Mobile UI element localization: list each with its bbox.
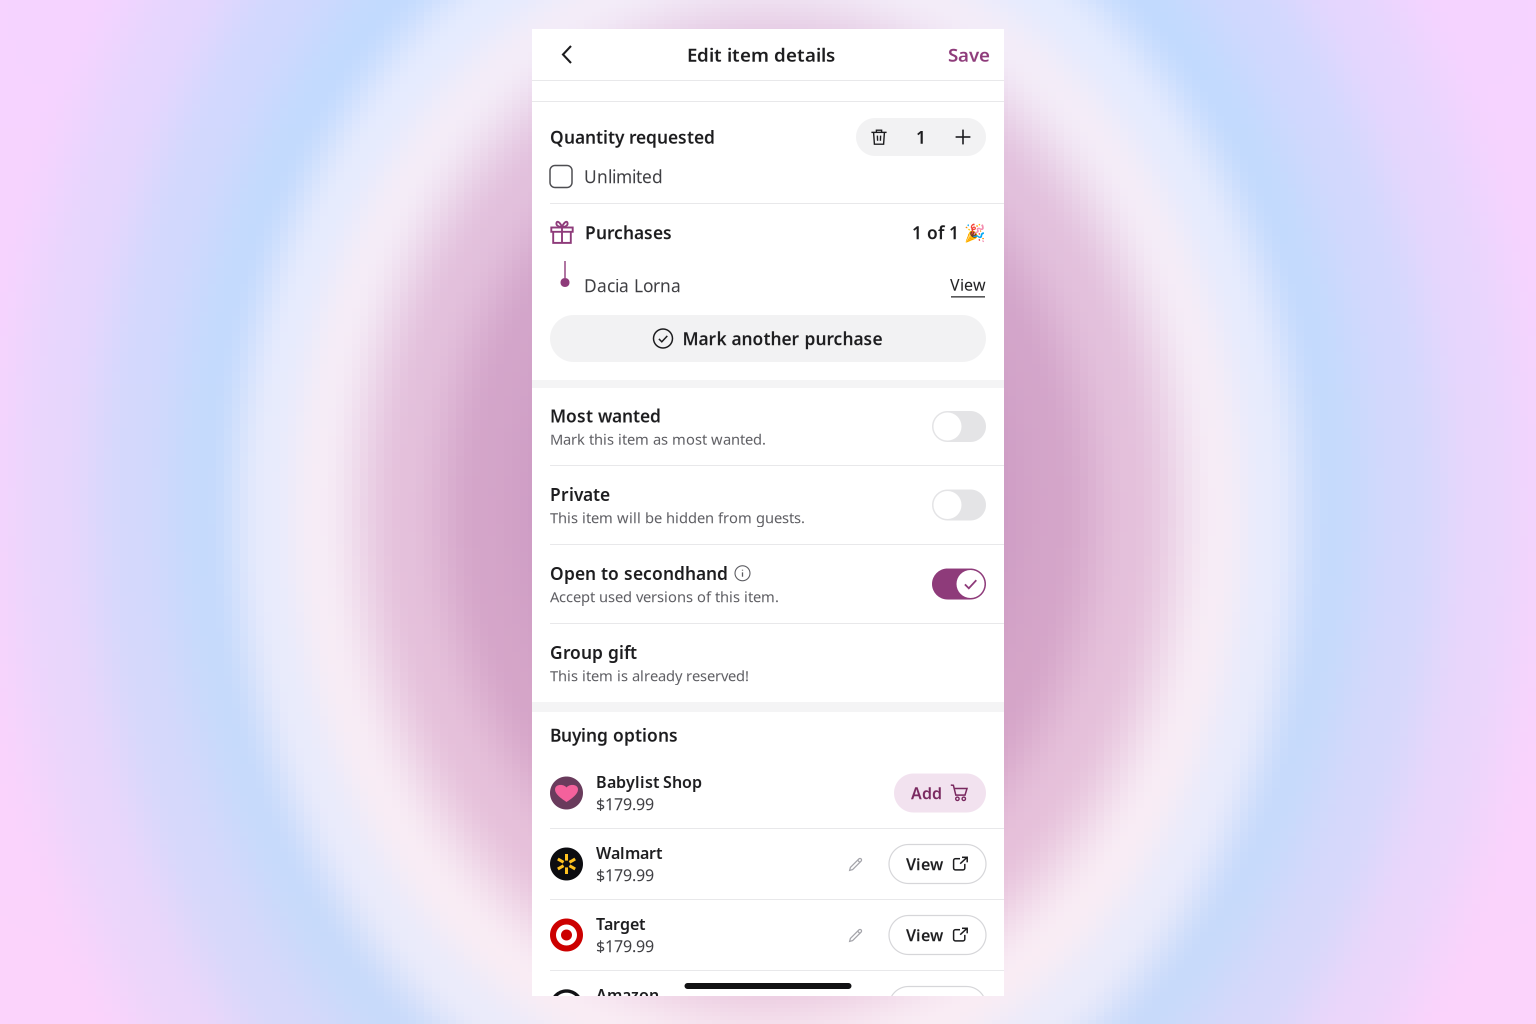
button[interactable]: Amazon: [532, 971, 1004, 1024]
staticText: 1: [916, 125, 926, 148]
staticText: Most wanted: [550, 404, 661, 427]
staticText: View: [906, 995, 943, 1017]
staticText: Walmart: [596, 842, 662, 863]
staticText: Private: [550, 483, 610, 506]
button[interactable]: Mark another purchase: [550, 315, 986, 362]
staticText: Group gift: [550, 641, 637, 664]
staticText: View: [950, 274, 986, 295]
button[interactable]: Babylist Shop: [532, 758, 1004, 828]
staticText: $179.99: [596, 793, 654, 815]
button[interactable]: Back: [546, 32, 588, 76]
staticText: Mark another purchase: [682, 327, 882, 350]
staticText: Quantity requested: [550, 125, 715, 148]
button[interactable]: View: [950, 261, 986, 297]
staticText: Unlimited: [584, 165, 663, 188]
staticText: View: [906, 853, 943, 875]
button[interactable]: Save: [934, 32, 990, 76]
button[interactable]: Group gift: [532, 624, 1004, 702]
staticText: Open to secondhand: [550, 562, 728, 585]
button[interactable]: Walmart: [532, 829, 1004, 899]
staticText: Buying options: [550, 723, 678, 746]
staticText: Edit item details: [687, 42, 835, 67]
staticText: $179.99: [596, 935, 654, 957]
staticText: $179.99: [596, 864, 654, 886]
staticText: 1 of 1 🎉: [912, 221, 986, 244]
button[interactable]: Add one: [940, 118, 986, 156]
staticText: Amazon: [596, 984, 659, 1005]
button[interactable]: Unlimited: [550, 165, 572, 187]
staticText: Babylist Shop: [596, 771, 702, 792]
staticText: Accept used versions of this item.: [550, 587, 779, 606]
button[interactable]: Target: [532, 900, 1004, 970]
staticText: Purchases: [585, 221, 672, 244]
button[interactable]: Most wanted: [532, 388, 1004, 465]
staticText: Target: [596, 913, 645, 934]
staticText: Dacia Lorna: [584, 274, 681, 297]
staticText: View: [906, 924, 943, 946]
button[interactable]: Open to secondhand: [532, 545, 1004, 623]
staticText: Mark this item as most wanted.: [550, 429, 766, 449]
staticText: Save: [948, 42, 990, 67]
staticText: This item is already reserved!: [550, 666, 749, 685]
button[interactable]: Remove one: [856, 118, 902, 156]
staticText: Add: [911, 782, 942, 804]
button[interactable]: Private: [532, 466, 1004, 544]
staticText: This item will be hidden from guests.: [550, 508, 805, 527]
